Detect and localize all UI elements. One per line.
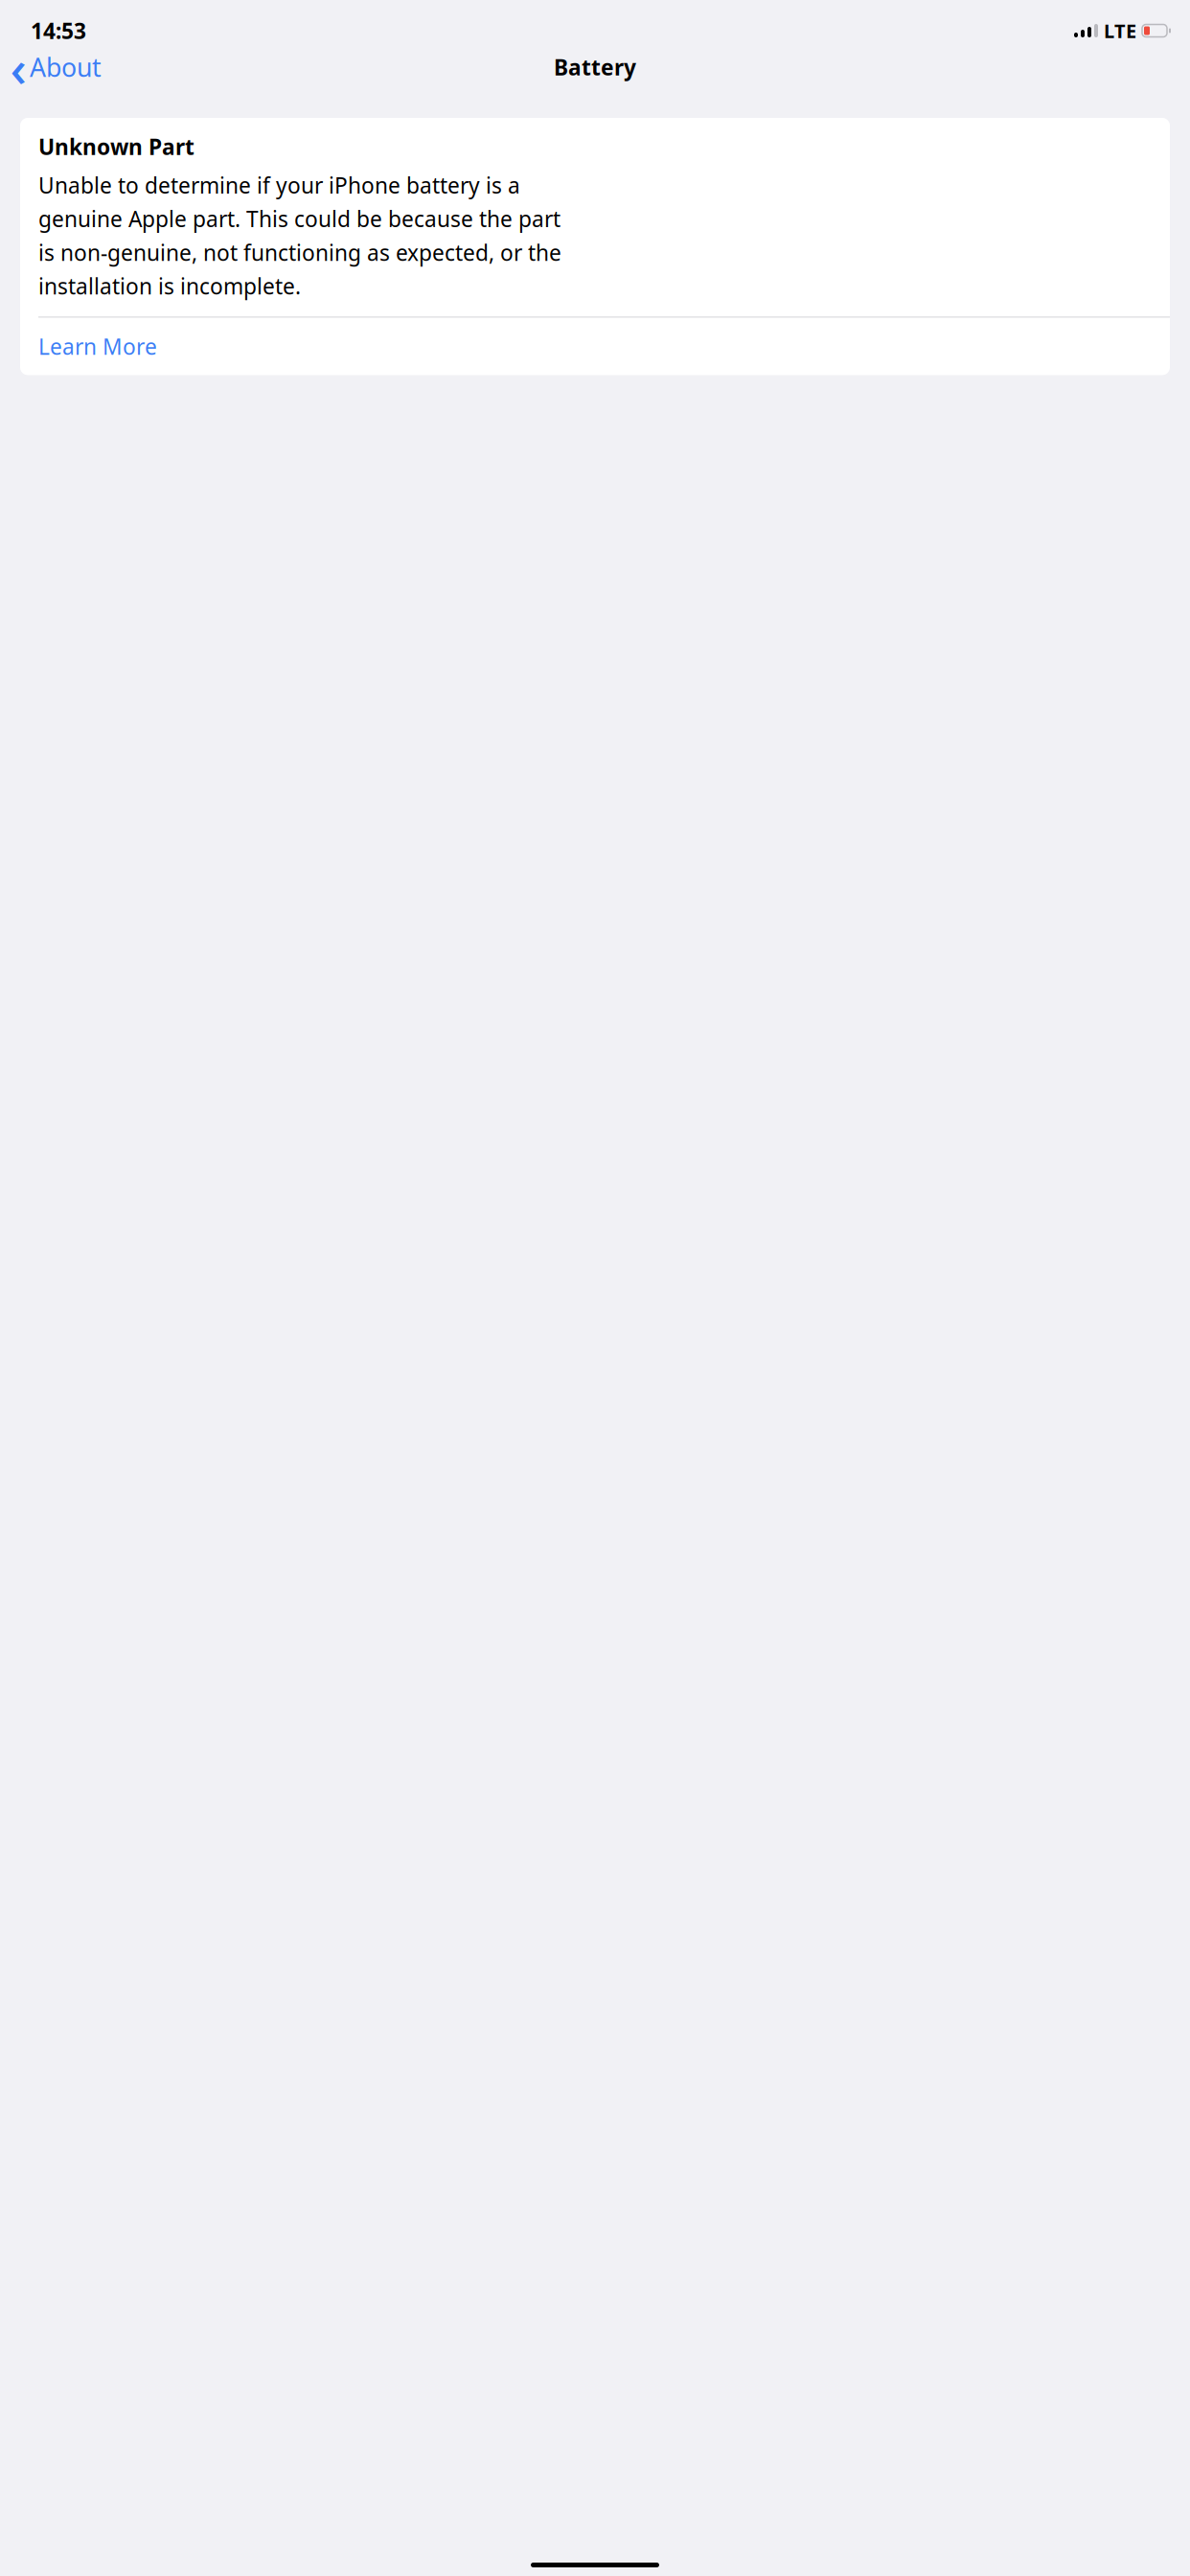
staticText: Battery	[554, 53, 636, 81]
staticText: About	[30, 50, 102, 84]
staticText: LTE	[1104, 18, 1136, 43]
staticText: Unknown Part	[38, 132, 195, 161]
button[interactable]: ‹	[0, 43, 111, 91]
staticText: 14:53	[31, 16, 86, 45]
staticText: Learn More	[38, 332, 157, 361]
staticText: Unable to determine if your iPhone batte…	[38, 171, 520, 200]
staticText: is non-genuine, not functioning as expec…	[38, 238, 561, 267]
staticText: genuine Apple part. This could be becaus…	[38, 204, 561, 233]
staticText: ‹	[10, 33, 26, 101]
staticText: installation is incomplete.	[38, 272, 301, 300]
button[interactable]: Learn More	[20, 317, 1170, 375]
